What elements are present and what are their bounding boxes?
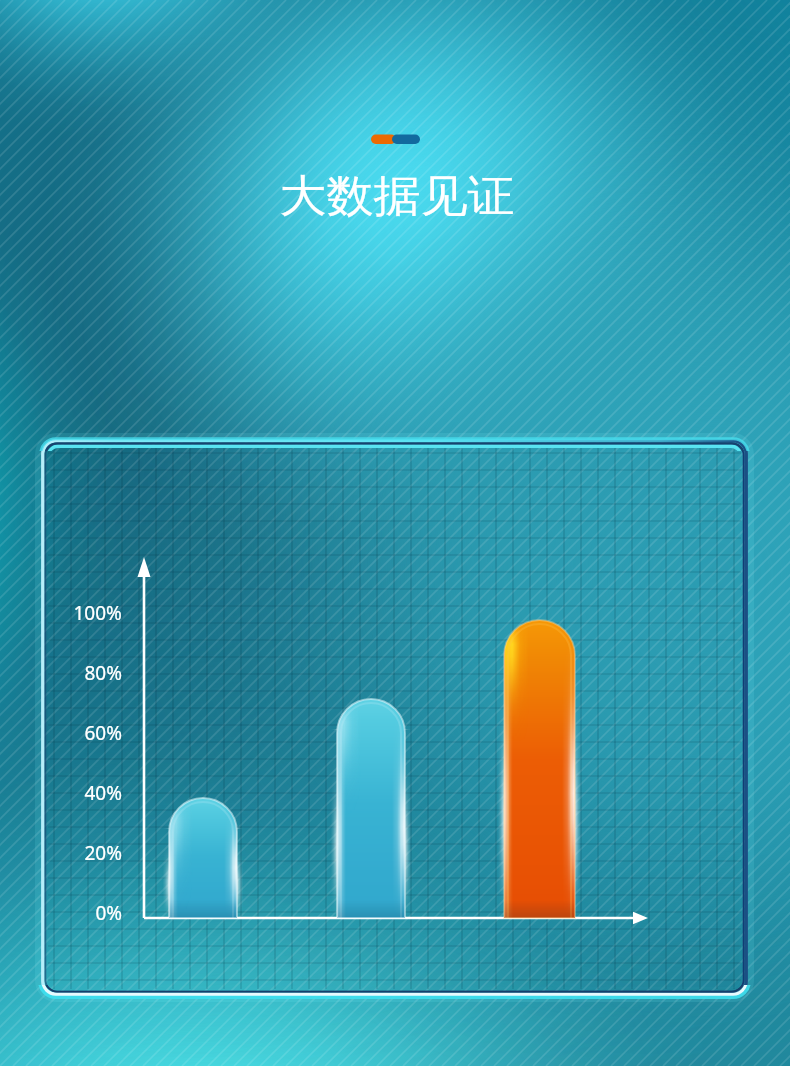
button[interactable]: 大数据见证	[276, 168, 518, 226]
button[interactable]: Section indicator	[365, 129, 425, 149]
button[interactable]: Bar chart: 40%, 73%, 100%	[41, 439, 748, 996]
